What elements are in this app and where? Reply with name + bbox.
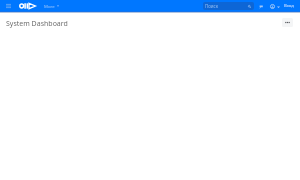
staticText: System Dashboard (6, 19, 68, 29)
button[interactable]: Menu (6, 3, 11, 9)
button[interactable]: More (42, 0, 61, 12)
staticText: Поиск (205, 3, 219, 9)
button[interactable]: Поиск (203, 2, 254, 10)
staticText: More (44, 3, 55, 9)
button[interactable]: More options (282, 18, 293, 27)
button[interactable]: Open menu (277, 4, 280, 9)
button[interactable]: Home (19, 3, 36, 9)
staticText: Вход (284, 3, 294, 9)
button[interactable]: Account (269, 3, 275, 9)
button[interactable]: Вход (282, 0, 296, 12)
button[interactable]: Messages (258, 4, 263, 9)
